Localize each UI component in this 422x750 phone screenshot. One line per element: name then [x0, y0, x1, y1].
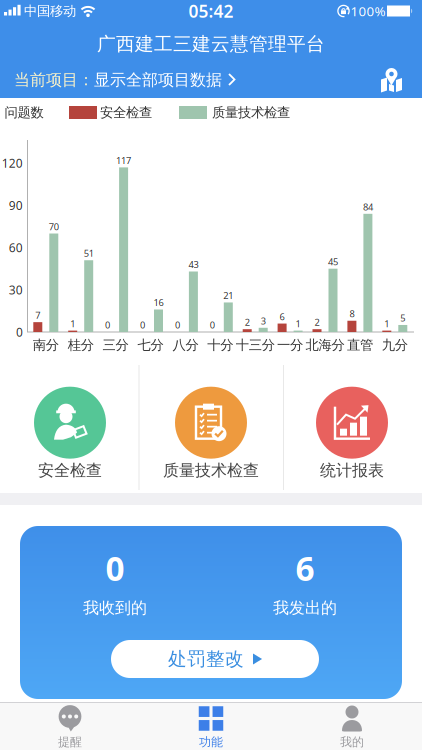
button[interactable]: 地图选点	[380, 67, 403, 93]
button[interactable]: 处罚整改	[111, 640, 319, 678]
staticText: 提醒	[58, 735, 82, 749]
staticText: 北海分	[305, 337, 344, 353]
button[interactable]: 统计报表	[316, 387, 388, 480]
staticText: 我收到的	[83, 598, 147, 618]
staticText: 处罚整改	[168, 647, 244, 670]
staticText: 八分	[172, 337, 198, 353]
staticText: 0	[16, 324, 23, 340]
staticText: 7	[35, 309, 40, 321]
staticText: 0	[175, 319, 180, 331]
staticText: 100%	[350, 2, 385, 20]
staticText: 问题数	[4, 104, 43, 121]
staticText: 51	[84, 247, 94, 259]
button[interactable]: 显示全部项目数据	[94, 70, 236, 90]
staticText: 3	[261, 315, 266, 327]
staticText: 一分	[277, 337, 303, 353]
staticText: 桂分	[68, 337, 94, 353]
button[interactable]: 我的	[325, 702, 379, 750]
staticText: 七分	[137, 337, 163, 353]
staticText: 5	[400, 312, 405, 324]
button[interactable]: 安全检查	[34, 387, 106, 480]
staticText: 2	[245, 316, 250, 328]
staticText: 0	[210, 319, 215, 331]
staticText: 1	[384, 317, 389, 330]
button[interactable]: 质量技术检查	[163, 387, 259, 480]
staticText: 21	[223, 289, 233, 302]
staticText: 1	[296, 317, 301, 330]
staticText: 0	[105, 546, 124, 590]
staticText: 我的	[340, 735, 364, 749]
staticText: 当前项目：	[14, 70, 94, 90]
staticText: 安全检查	[38, 461, 102, 480]
staticText: 30	[9, 282, 23, 298]
staticText: 功能	[199, 735, 223, 749]
staticText: 05:42	[188, 0, 233, 22]
staticText: 117	[116, 154, 131, 167]
staticText: 广西建工三建云慧管理平台	[97, 32, 325, 55]
staticText: 十分	[207, 337, 233, 353]
staticText: 质量技术检查	[212, 104, 290, 121]
staticText: 质量技术检查	[163, 461, 259, 480]
staticText: 8	[349, 307, 354, 320]
staticText: 1	[70, 317, 75, 330]
staticText: 84	[363, 201, 373, 213]
staticText: 安全检查	[100, 104, 152, 121]
staticText: 6	[295, 546, 314, 590]
staticText: 三分	[103, 337, 129, 353]
button[interactable]: 提醒	[43, 702, 97, 750]
staticText: 45	[328, 255, 338, 268]
button[interactable]: 功能	[184, 702, 238, 750]
staticText: 南分	[33, 337, 59, 353]
staticText: 2	[314, 316, 319, 328]
staticText: 十三分	[236, 337, 275, 353]
staticText: 0	[140, 319, 145, 331]
staticText: 70	[49, 220, 59, 233]
staticText: 43	[188, 258, 198, 271]
staticText: 90	[9, 197, 23, 213]
staticText: 120	[2, 155, 23, 171]
staticText: 16	[153, 296, 163, 309]
staticText: 九分	[382, 337, 408, 353]
staticText: 统计报表	[320, 461, 384, 480]
staticText: 0	[105, 319, 110, 331]
staticText: 60	[9, 240, 23, 255]
staticText: 6	[280, 310, 285, 323]
staticText: 中国移动	[24, 3, 76, 19]
staticText: 直管	[347, 337, 373, 353]
staticText: 显示全部项目数据	[94, 70, 222, 90]
staticText: 我发出的	[273, 598, 337, 618]
